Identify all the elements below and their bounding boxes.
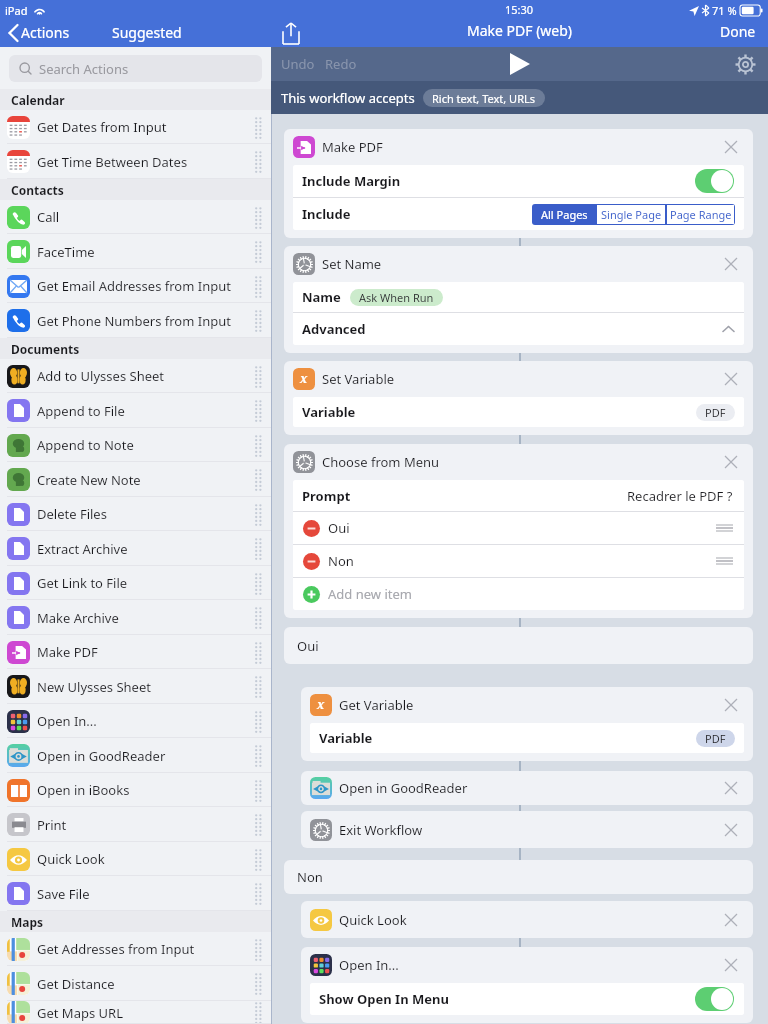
button[interactable]: Include <box>293 198 744 230</box>
button[interactable] <box>695 987 734 1011</box>
button[interactable]: Show Open In Menu <box>310 983 744 1015</box>
button[interactable]: Open in GoodReader <box>301 771 753 805</box>
button[interactable]: Remove action <box>719 361 743 397</box>
button[interactable]: Share <box>282 22 300 45</box>
button[interactable]: Run workflow <box>510 53 530 75</box>
button[interactable]: Non <box>293 545 744 577</box>
button[interactable]: Save File <box>0 876 271 911</box>
staticText: Non <box>297 868 323 886</box>
button[interactable]: Include Margin <box>293 165 744 197</box>
button[interactable]: Get Addresses from Input <box>0 932 271 966</box>
button[interactable]: Quick Look <box>301 901 753 938</box>
staticText: Extract Archive <box>37 540 128 558</box>
button[interactable]: Get Link to File <box>0 566 271 600</box>
button[interactable]: Suggested <box>112 23 182 42</box>
button[interactable]: Make PDF <box>284 129 753 165</box>
staticText: Delete Files <box>37 505 107 523</box>
staticText: All Pages <box>541 207 588 222</box>
button[interactable]: Redo <box>325 55 357 73</box>
button[interactable] <box>695 169 734 193</box>
button[interactable]: Page Range <box>666 204 735 225</box>
staticText: Make PDF <box>322 138 383 156</box>
button[interactable]: Remove action <box>719 811 743 848</box>
button[interactable]: Done <box>720 22 756 41</box>
button[interactable]: Open in iBooks <box>0 773 271 807</box>
button[interactable]: Get Maps URL <box>0 1001 271 1024</box>
button[interactable]: Add to Ulysses Sheet <box>0 359 271 393</box>
button[interactable]: Variable <box>310 723 744 753</box>
button[interactable]: Delete Files <box>0 497 271 531</box>
staticText: Done <box>720 22 756 41</box>
button[interactable]: Add new item <box>293 578 744 610</box>
staticText: Make Archive <box>37 609 119 627</box>
button[interactable]: Choose from Menu <box>284 444 753 480</box>
button[interactable]: Oui <box>284 627 753 664</box>
button[interactable]: Remove action <box>719 129 743 165</box>
button[interactable]: Extract Archive <box>0 531 271 566</box>
button[interactable]: x <box>284 361 753 397</box>
button[interactable]: FaceTime <box>0 234 271 269</box>
staticText: Prompt <box>302 487 351 505</box>
button[interactable]: Call <box>0 200 271 234</box>
staticText: Quick Look <box>339 911 407 929</box>
button[interactable]: Remove action <box>719 771 743 805</box>
button[interactable]: Get Email Addresses from Input <box>0 269 271 303</box>
staticText: Get Dates from Input <box>37 118 167 136</box>
button[interactable]: Open In... <box>0 704 271 738</box>
button[interactable]: Advanced <box>293 313 744 345</box>
staticText: Include <box>302 205 351 223</box>
button[interactable]: Open in GoodReader <box>0 738 271 773</box>
button[interactable]: Remove action <box>719 444 743 480</box>
button[interactable]: Remove action <box>719 901 743 938</box>
button[interactable]: Append to Note <box>0 428 271 462</box>
staticText: Search Actions <box>39 60 129 78</box>
button[interactable]: Remove action <box>719 687 743 723</box>
button[interactable]: Search Actions <box>9 55 262 82</box>
staticText: Recadrer le PDF ? <box>627 487 733 505</box>
button[interactable]: PDF <box>696 730 735 747</box>
button[interactable]: Exit Workflow <box>301 811 753 848</box>
staticText: Open in iBooks <box>37 781 130 799</box>
staticText: Maps <box>11 914 44 930</box>
button[interactable]: Open In... <box>301 947 753 983</box>
staticText: Single Page <box>601 207 662 222</box>
staticText: Append to Note <box>37 436 134 454</box>
button[interactable]: Make Archive <box>0 600 271 635</box>
staticText: Add to Ulysses Sheet <box>37 367 165 385</box>
button[interactable]: Variable <box>293 397 744 427</box>
button[interactable]: x <box>301 687 753 723</box>
button[interactable]: Prompt <box>293 480 744 511</box>
staticText: Quick Look <box>37 850 105 868</box>
button[interactable]: Single Page <box>596 204 666 225</box>
staticText: Create New Note <box>37 471 141 489</box>
button[interactable]: Oui <box>293 512 744 544</box>
button[interactable]: All Pages <box>532 204 596 225</box>
button[interactable]: Get Phone Numbers from Input <box>0 303 271 338</box>
button[interactable]: Rich text, Text, URLs <box>423 89 545 107</box>
button[interactable]: Non <box>284 860 753 894</box>
button[interactable]: Set Name <box>284 246 753 282</box>
staticText: Open in GoodReader <box>37 747 166 765</box>
staticText: Actions <box>21 23 70 42</box>
staticText: 71 % <box>712 3 737 18</box>
button[interactable]: PDF <box>696 404 735 421</box>
button[interactable]: Quick Look <box>0 842 271 876</box>
button[interactable]: Actions <box>8 23 70 42</box>
button[interactable]: Ask When Run <box>350 289 443 306</box>
button[interactable]: Undo <box>281 55 315 73</box>
button[interactable]: New Ulysses Sheet <box>0 669 271 704</box>
button[interactable]: Settings <box>735 54 756 75</box>
staticText: Page Range <box>670 207 732 222</box>
button[interactable]: Append to File <box>0 393 271 428</box>
button[interactable]: Get Dates from Input <box>0 110 271 144</box>
button[interactable]: Name <box>293 282 744 312</box>
staticText: Exit Workflow <box>339 821 423 839</box>
button[interactable]: Remove action <box>719 947 743 983</box>
button[interactable]: Print <box>0 807 271 842</box>
staticText: This workflow accepts <box>281 89 415 107</box>
button[interactable]: Make PDF <box>0 635 271 669</box>
button[interactable]: Get Time Between Dates <box>0 144 271 179</box>
button[interactable]: Create New Note <box>0 462 271 497</box>
button[interactable]: Remove action <box>719 246 743 282</box>
button[interactable]: Get Distance <box>0 966 271 1001</box>
